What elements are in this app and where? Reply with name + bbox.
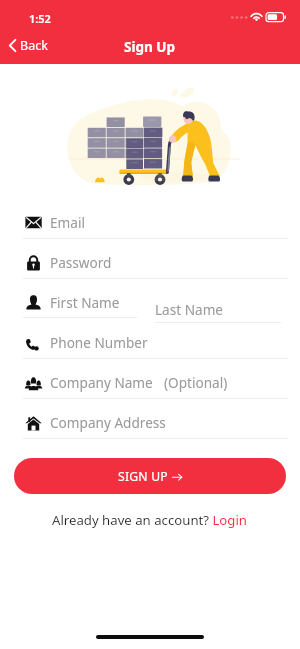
staticText: Phone Number	[50, 333, 148, 352]
button[interactable]: Back	[4, 34, 52, 57]
staticText: SIGN UP	[118, 468, 168, 485]
staticText: Back	[20, 37, 48, 54]
staticText: Already have an account? Login	[52, 511, 248, 529]
staticText: Sign Up	[124, 38, 176, 56]
staticText: Last Name	[155, 300, 224, 319]
button[interactable]: First Name	[16, 287, 120, 317]
button[interactable]: Already have an account? Login	[44, 508, 256, 532]
button[interactable]: Password	[16, 247, 112, 277]
button[interactable]: SIGN UP	[14, 458, 286, 494]
staticText: Company Name	[50, 373, 153, 392]
staticText: Password	[50, 253, 112, 272]
button[interactable]: Company Address	[16, 407, 166, 437]
button[interactable]: Email	[16, 207, 85, 237]
staticText: 1:52	[29, 11, 51, 26]
button[interactable]: Phone Number	[16, 327, 148, 357]
staticText: Company Address	[50, 413, 166, 432]
button[interactable]: Company Name	[16, 367, 228, 397]
staticText: Email	[50, 213, 85, 232]
staticText: (Optional)	[164, 373, 228, 392]
staticText: First Name	[50, 293, 120, 312]
button[interactable]: Last Name	[155, 296, 281, 322]
